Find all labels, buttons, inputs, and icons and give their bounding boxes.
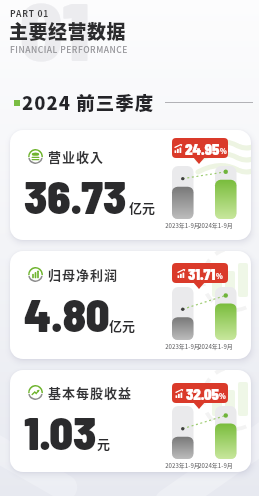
- staticText: %: [220, 146, 227, 156]
- staticText: 亿元: [109, 316, 136, 335]
- staticText: 元: [97, 434, 111, 453]
- staticText: 24.95: [185, 140, 220, 157]
- staticText: 31.71: [188, 265, 216, 282]
- staticText: 2023年1-9月: [165, 221, 200, 230]
- staticText: 1.03: [24, 404, 97, 459]
- staticText: 主要经营数据: [9, 17, 127, 45]
- button[interactable]: 营业收入: [10, 130, 251, 240]
- staticText: 营业收入: [48, 147, 105, 166]
- staticText: FINANCIAL PERFORMANCE: [10, 43, 128, 55]
- staticText: 2024年1-9月: [198, 461, 233, 470]
- staticText: 2024年1-9月: [198, 342, 233, 351]
- button[interactable]: 基本每股收益: [10, 370, 251, 472]
- staticText: 亿元: [129, 198, 156, 217]
- staticText: 2023年1-9月: [165, 342, 200, 351]
- staticText: 32.05: [186, 385, 219, 402]
- staticText: %: [219, 391, 226, 401]
- staticText: 4.80: [24, 286, 110, 341]
- staticText: 2024年1-9月: [198, 221, 233, 230]
- button[interactable]: 归母净利润: [10, 251, 251, 359]
- staticText: %: [216, 271, 223, 281]
- staticText: 2023年1-9月: [165, 461, 200, 470]
- staticText: PART 01: [10, 7, 50, 19]
- staticText: 基本每股收益: [48, 383, 133, 402]
- staticText: 01: [20, 0, 90, 77]
- staticText: 归母净利润: [48, 265, 119, 284]
- staticText: 2024 前三季度: [22, 89, 155, 116]
- staticText: 36.73: [24, 168, 127, 223]
